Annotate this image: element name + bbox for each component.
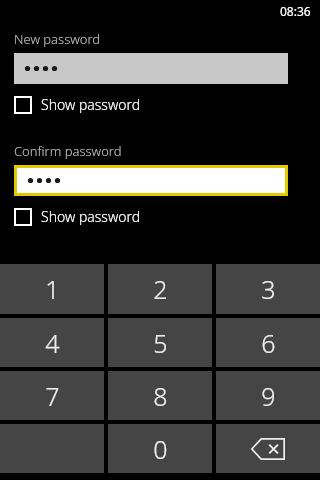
staticText: 4	[45, 326, 60, 360]
button[interactable]: 8	[108, 371, 212, 420]
staticText: 7	[45, 379, 60, 413]
button[interactable]: 6	[216, 318, 320, 367]
staticText: 1	[45, 272, 60, 306]
button[interactable]: 9	[216, 371, 320, 420]
staticText: New password	[14, 30, 101, 48]
staticText: Confirm password	[14, 142, 122, 160]
button[interactable]: Show password	[14, 92, 141, 117]
button[interactable]: 5	[108, 318, 212, 367]
button[interactable]: 1	[0, 264, 104, 314]
staticText: 08:36	[280, 3, 311, 19]
button[interactable]: 2	[108, 264, 212, 314]
staticText: 0	[153, 432, 168, 466]
button[interactable]: 7	[0, 371, 104, 420]
staticText: 3	[261, 272, 276, 306]
button[interactable]: Show password	[14, 204, 141, 229]
staticText: 2	[153, 272, 168, 306]
button[interactable]: Backspace	[216, 424, 320, 473]
staticText: 8	[153, 379, 168, 413]
staticText: 9	[261, 379, 276, 413]
button[interactable]	[14, 53, 288, 84]
button[interactable]: 3	[216, 264, 320, 314]
staticText: Show password	[41, 207, 141, 226]
button[interactable]: 4	[0, 318, 104, 367]
staticText: 5	[153, 326, 168, 360]
button[interactable]: 0	[108, 424, 212, 473]
button[interactable]	[17, 168, 285, 193]
staticText: Show password	[41, 95, 141, 114]
staticText: 6	[261, 326, 276, 360]
